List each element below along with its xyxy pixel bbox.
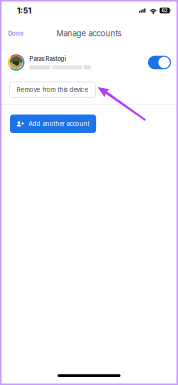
button[interactable]: Add another account (10, 114, 96, 133)
staticText: 62 (161, 7, 167, 13)
button[interactable]: Sync this account (148, 56, 171, 69)
staticText: Remove from this device (16, 86, 88, 93)
staticText: Done (8, 30, 23, 37)
staticText: Paras Rastogi (29, 55, 66, 62)
staticText: 1:51 (17, 6, 31, 15)
button[interactable]: Done (0, 25, 31, 42)
button[interactable]: Remove from this device (9, 82, 95, 97)
staticText: Add another account (28, 120, 89, 127)
staticText: Manage accounts (56, 29, 121, 38)
